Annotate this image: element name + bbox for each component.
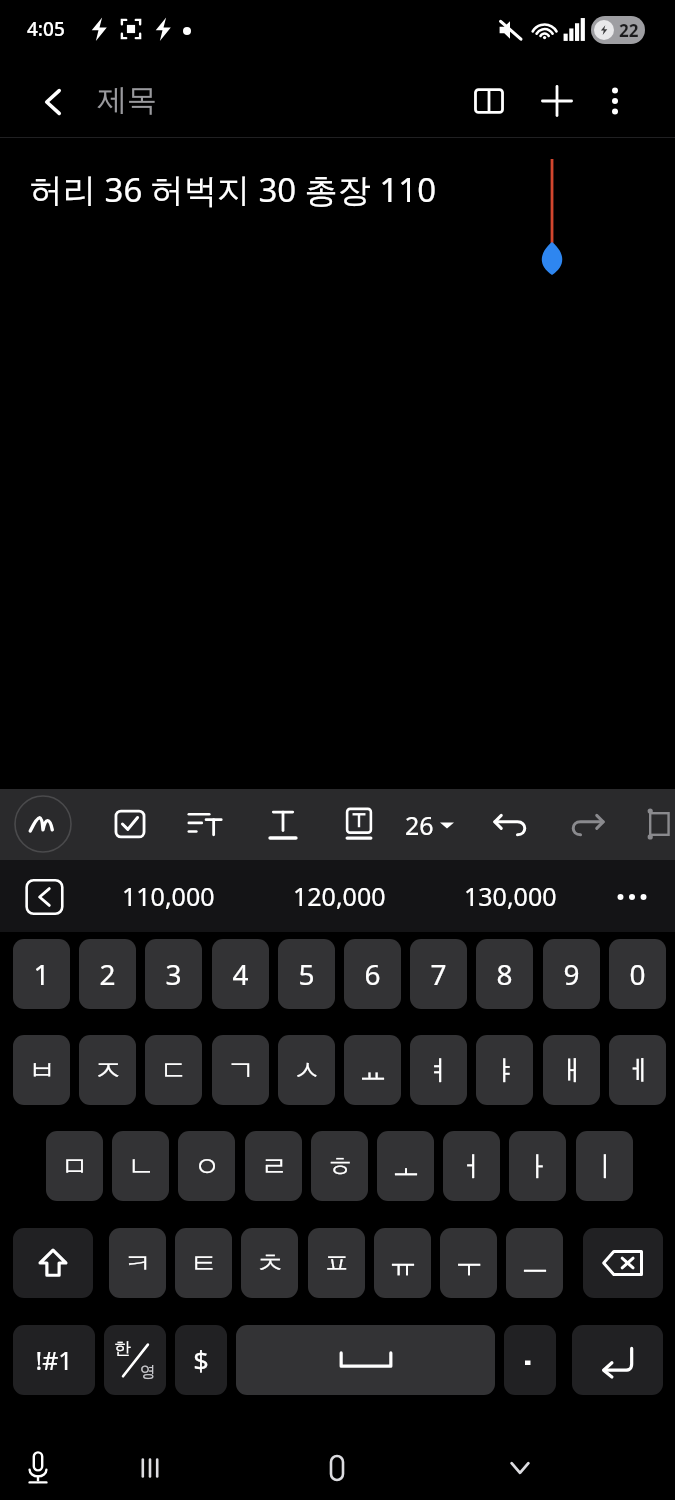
button[interactable]: ㅕ — [410, 1035, 467, 1105]
staticText: ㅔ — [624, 1053, 652, 1088]
button[interactable]: Previous — [18, 876, 72, 918]
staticText: ㅈ — [94, 1053, 122, 1088]
button[interactable]: 허리 36 허벅지 30 총장 110 — [0, 139, 675, 789]
button[interactable]: ㅈ — [79, 1035, 136, 1105]
button[interactable]: ㅎ — [311, 1131, 368, 1201]
button[interactable]: 8 — [476, 939, 533, 1009]
button[interactable]: 5 — [278, 939, 335, 1009]
button[interactable]: 120,000 — [289, 872, 389, 920]
button[interactable]: More suggestions — [608, 874, 656, 918]
button[interactable]: Recent apps — [120, 1438, 180, 1498]
button[interactable]: More — [634, 797, 675, 851]
button[interactable]: Voice input — [8, 1438, 68, 1498]
button[interactable]: ㄴ — [112, 1131, 169, 1201]
button[interactable]: More options — [592, 75, 638, 127]
button[interactable]: !#1 — [13, 1325, 95, 1395]
button[interactable]: ㄱ — [212, 1035, 269, 1105]
button[interactable]: Backspace — [583, 1228, 663, 1298]
button[interactable]: Period — [504, 1325, 556, 1395]
button[interactable]: Space — [236, 1325, 495, 1395]
button[interactable]: Shift — [13, 1228, 93, 1298]
button[interactable]: ㅑ — [476, 1035, 533, 1105]
staticText: ㅍ — [323, 1246, 351, 1281]
button[interactable]: 9 — [543, 939, 600, 1009]
button[interactable]: ㅌ — [175, 1228, 232, 1298]
button[interactable]: ㅛ — [344, 1035, 401, 1105]
button[interactable]: Home — [307, 1438, 367, 1498]
button[interactable]: View mode — [463, 75, 515, 127]
staticText: 120,000 — [293, 879, 386, 913]
button[interactable]: 26 — [405, 803, 454, 847]
staticText: 5 — [298, 955, 315, 993]
staticText: ㅕ — [425, 1053, 453, 1088]
button[interactable]: ㅋ — [109, 1228, 166, 1298]
button[interactable]: ㅊ — [241, 1228, 298, 1298]
button[interactable]: ㅠ — [374, 1228, 431, 1298]
staticText: 8 — [496, 955, 513, 993]
staticText: 한 — [114, 1338, 131, 1359]
button[interactable]: 130,000 — [460, 872, 560, 920]
button[interactable]: ㅓ — [443, 1131, 500, 1201]
button[interactable]: Text box — [332, 797, 386, 851]
button[interactable]: ㅇ — [178, 1131, 235, 1201]
button[interactable]: ㅏ — [509, 1131, 566, 1201]
staticText: 26 — [405, 808, 434, 842]
staticText: ㄱ — [227, 1053, 255, 1088]
button[interactable]: 2 — [79, 939, 136, 1009]
button[interactable]: ㅁ — [46, 1131, 103, 1201]
button[interactable]: ㅡ — [506, 1228, 563, 1298]
button[interactable]: Handwriting — [14, 795, 72, 853]
button[interactable]: ㄷ — [145, 1035, 202, 1105]
staticText: ㅇ — [193, 1149, 221, 1184]
button[interactable]: ㅐ — [543, 1035, 600, 1105]
button[interactable]: ㅅ — [278, 1035, 335, 1105]
button[interactable]: Hide keyboard — [490, 1438, 550, 1498]
staticText: $ — [193, 1342, 209, 1379]
button[interactable]: Add — [531, 75, 583, 127]
staticText: 22 — [619, 19, 639, 42]
button[interactable]: ㅔ — [609, 1035, 666, 1105]
button[interactable]: 1 — [13, 939, 70, 1009]
button[interactable]: $ — [175, 1325, 227, 1395]
button[interactable]: 4 — [212, 939, 269, 1009]
staticText: ㅠ — [389, 1246, 417, 1281]
staticText: ㄴ — [127, 1149, 155, 1184]
button[interactable]: Redo — [560, 797, 614, 851]
staticText: 2 — [99, 955, 116, 993]
button[interactable]: 6 — [344, 939, 401, 1009]
button[interactable]: Text style — [256, 797, 310, 851]
staticText: 영 — [140, 1362, 156, 1382]
staticText: ㅓ — [458, 1149, 486, 1184]
staticText: 9 — [563, 955, 580, 993]
button[interactable]: ㅜ — [440, 1228, 497, 1298]
staticText: 제목 — [97, 81, 157, 119]
button[interactable]: ㅂ — [13, 1035, 70, 1105]
button[interactable]: ㄹ — [245, 1131, 302, 1201]
button[interactable]: Checklist — [103, 797, 157, 851]
button[interactable]: ㅍ — [308, 1228, 365, 1298]
button[interactable]: Undo — [484, 797, 538, 851]
button[interactable]: 0 — [609, 939, 666, 1009]
button[interactable]: 110,000 — [118, 872, 218, 920]
button[interactable]: 7 — [410, 939, 467, 1009]
staticText: ㅊ — [256, 1246, 284, 1281]
button[interactable]: Back — [28, 76, 80, 128]
button[interactable]: Enter — [572, 1325, 663, 1395]
staticText: ㅗ — [392, 1149, 420, 1184]
button[interactable]: ㅣ — [576, 1131, 633, 1201]
staticText: ㄹ — [260, 1149, 288, 1184]
staticText: ㅣ — [591, 1149, 619, 1184]
staticText: 0 — [629, 955, 646, 993]
staticText: !#1 — [35, 1343, 73, 1377]
staticText: ㅌ — [190, 1246, 218, 1281]
staticText: ㅋ — [124, 1246, 152, 1281]
staticText: ㅡ — [521, 1246, 549, 1281]
staticText: ㅎ — [326, 1149, 354, 1184]
button[interactable]: Paragraph style — [178, 797, 232, 851]
button[interactable]: ㅗ — [377, 1131, 434, 1201]
button[interactable]: 3 — [145, 939, 202, 1009]
button[interactable]: Korean English toggle — [104, 1325, 166, 1395]
staticText: ㄷ — [160, 1053, 188, 1088]
staticText: 1 — [33, 955, 50, 993]
staticText: ㅏ — [524, 1149, 552, 1184]
